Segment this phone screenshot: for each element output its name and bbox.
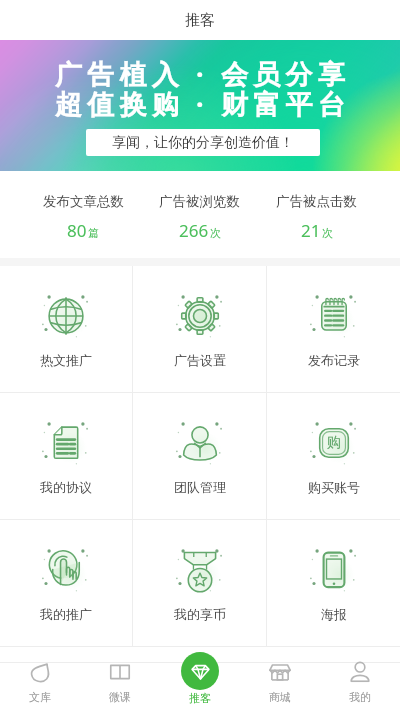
button[interactable]: 海报	[267, 520, 400, 646]
button[interactable]: 推客	[160, 652, 240, 710]
staticText: 我的协议	[40, 479, 92, 495]
staticText: 推客	[189, 691, 211, 705]
button[interactable]: 我的协议	[0, 393, 132, 519]
staticText: 80	[67, 219, 87, 242]
staticText: 次	[322, 226, 333, 240]
staticText: 我的推广	[40, 606, 92, 622]
staticText: 我的	[349, 690, 371, 704]
staticText: 广告植入 · 会员分享 超值换购 · 财富平台	[55, 55, 350, 122]
button[interactable]: 我的享币	[133, 520, 266, 646]
staticText: 发布记录	[308, 352, 360, 368]
staticText: 推客	[185, 11, 215, 30]
button[interactable]: 广告设置	[133, 266, 266, 392]
staticText: 次	[210, 226, 221, 240]
staticText: 篇	[88, 226, 99, 240]
staticText: 商城	[269, 690, 291, 704]
staticText: 广告被浏览数	[159, 193, 240, 210]
button[interactable]: 商城	[240, 652, 320, 710]
staticText: 热文推广	[40, 352, 92, 368]
staticText: 广告被点击数	[276, 193, 357, 210]
staticText: 海报	[321, 606, 347, 622]
staticText: 发布文章总数	[43, 193, 124, 210]
staticText: 21	[301, 219, 321, 242]
staticText: 文库	[29, 690, 51, 704]
staticText: 购	[327, 434, 341, 452]
button[interactable]: 发布记录	[267, 266, 400, 392]
button[interactable]: 团队管理	[133, 393, 266, 519]
button[interactable]: 购	[267, 393, 400, 519]
button[interactable]: 热文推广	[0, 266, 132, 392]
staticText: 我的享币	[174, 606, 226, 622]
button[interactable]: 文库	[0, 652, 80, 710]
button[interactable]: 我的推广	[0, 520, 132, 646]
button[interactable]: 微课	[80, 652, 160, 710]
button[interactable]: 我的	[320, 652, 400, 710]
staticText: 购买账号	[308, 479, 360, 495]
staticText: 266	[179, 219, 209, 242]
staticText: 微课	[109, 690, 131, 704]
staticText: 团队管理	[174, 479, 226, 495]
staticText: 享闻，让你的分享创造价值！	[112, 134, 294, 152]
staticText: 广告设置	[174, 352, 226, 368]
